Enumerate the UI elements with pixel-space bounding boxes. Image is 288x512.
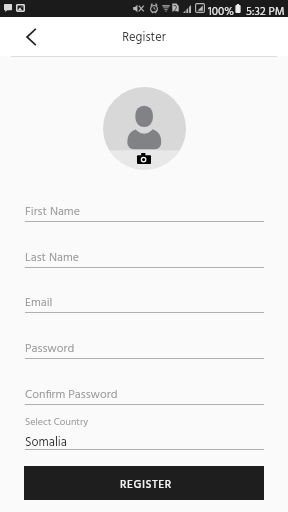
- staticText: Register: [0, 28, 288, 48]
- staticText: Somalia: [25, 433, 67, 453]
- button[interactable]: Password: [25, 331, 264, 359]
- staticText: Select Country: [25, 414, 89, 430]
- staticText: 5:32 PM: [246, 3, 285, 20]
- staticText: REGISTER: [120, 476, 172, 494]
- staticText: 2: [173, 3, 178, 12]
- button[interactable]: Confirm Password: [25, 377, 264, 405]
- staticText: Password: [25, 339, 75, 358]
- button[interactable]: Last Name: [25, 240, 264, 268]
- button[interactable]: REGISTER: [24, 466, 264, 500]
- button[interactable]: Email: [25, 285, 264, 313]
- staticText: Confirm Password: [25, 385, 118, 404]
- staticText: Last Name: [25, 248, 79, 267]
- staticText: 100%: [208, 3, 234, 20]
- button[interactable]: Back: [18, 24, 43, 49]
- button[interactable]: First Name: [25, 194, 264, 222]
- staticText: Email: [25, 293, 53, 312]
- button[interactable]: Select Country: [25, 412, 264, 450]
- button[interactable]: Change profile photo: [103, 87, 186, 170]
- staticText: First Name: [25, 202, 80, 221]
